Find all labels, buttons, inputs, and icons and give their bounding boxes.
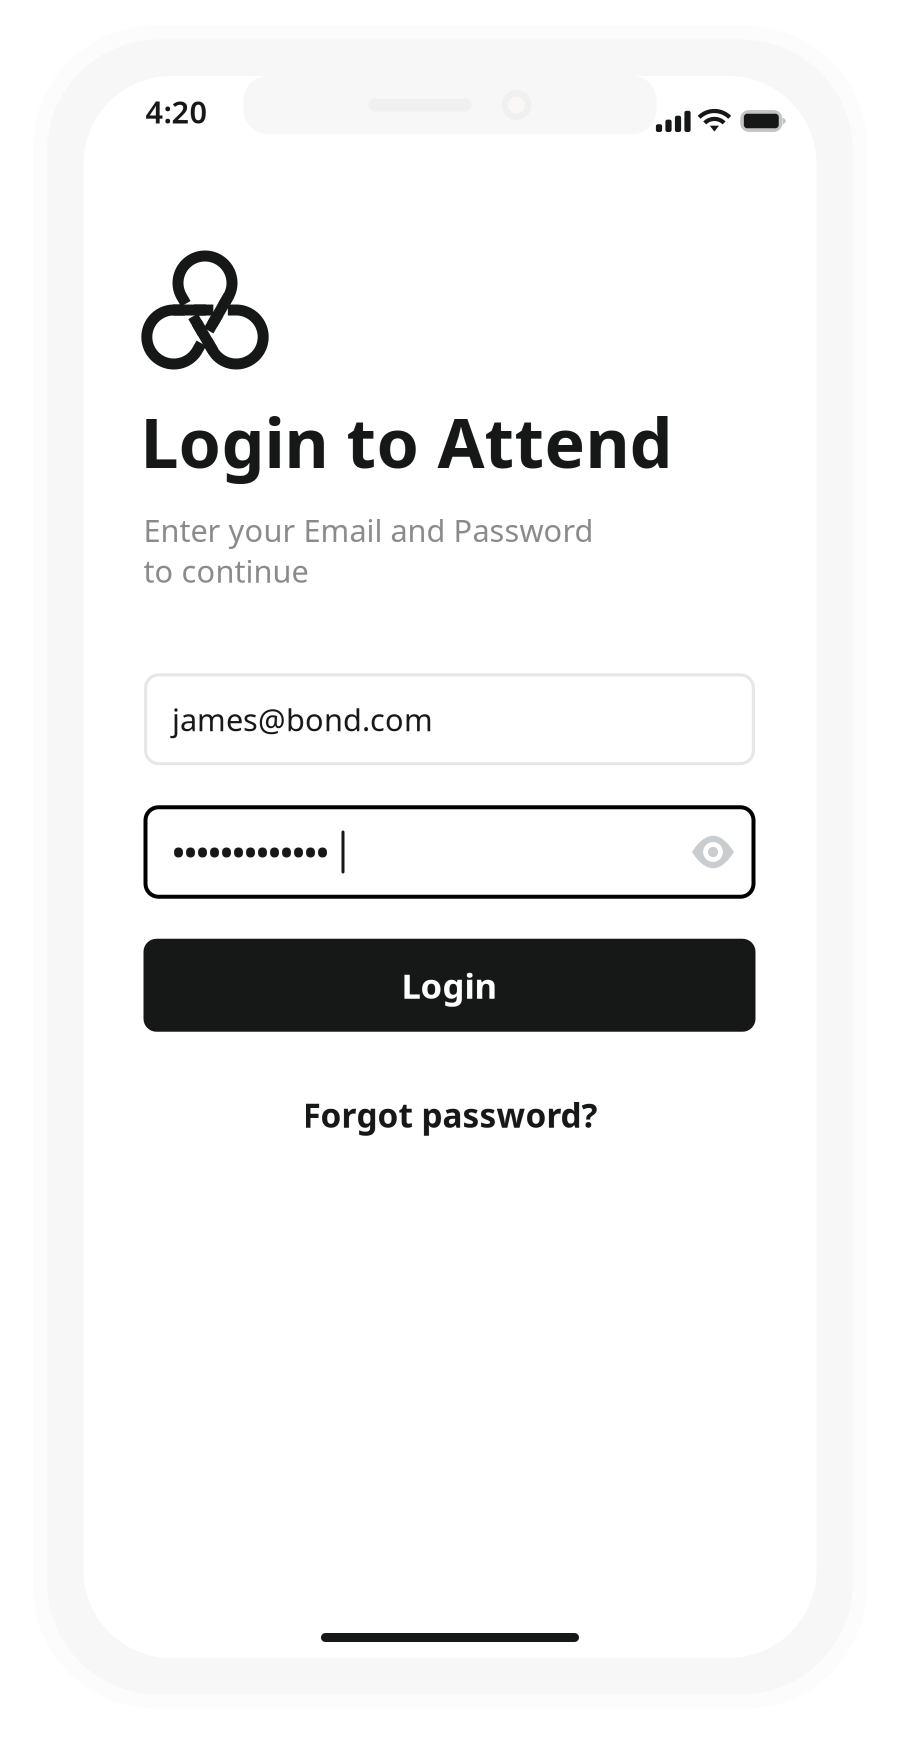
staticText: Login xyxy=(401,962,497,1008)
button[interactable]: Show password xyxy=(691,836,734,867)
button[interactable]: james@bond.com xyxy=(144,673,755,765)
staticText: 4:20 xyxy=(145,91,207,132)
staticText: Enter your Email and Password to continu… xyxy=(143,510,593,591)
staticText: Forgot password? xyxy=(302,1093,597,1137)
button[interactable]: Forgot password? xyxy=(83,1093,816,1137)
staticText: ••••••••••••• xyxy=(172,831,328,873)
staticText: Login to Attend xyxy=(140,396,672,487)
staticText: james@bond.com xyxy=(172,699,433,740)
button[interactable]: Login xyxy=(143,939,755,1032)
